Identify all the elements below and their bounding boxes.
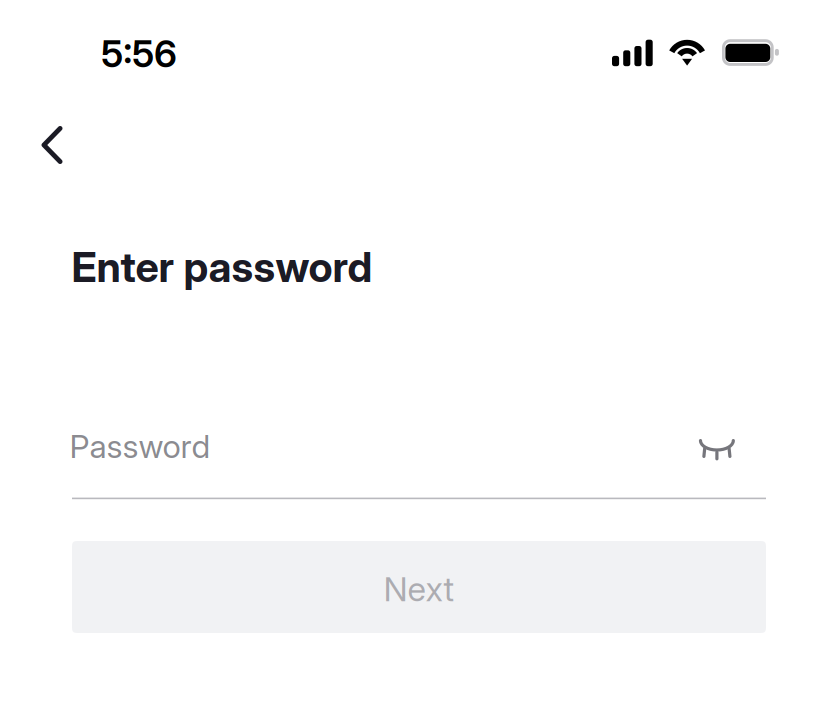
button[interactable]: Show password <box>689 422 745 478</box>
staticText: Password <box>69 427 210 466</box>
button[interactable]: Back <box>21 114 83 176</box>
staticText: 5:56 <box>101 31 177 76</box>
button[interactable]: Next <box>72 541 766 633</box>
staticText: Enter password <box>72 242 373 292</box>
staticText: Next <box>383 569 454 609</box>
